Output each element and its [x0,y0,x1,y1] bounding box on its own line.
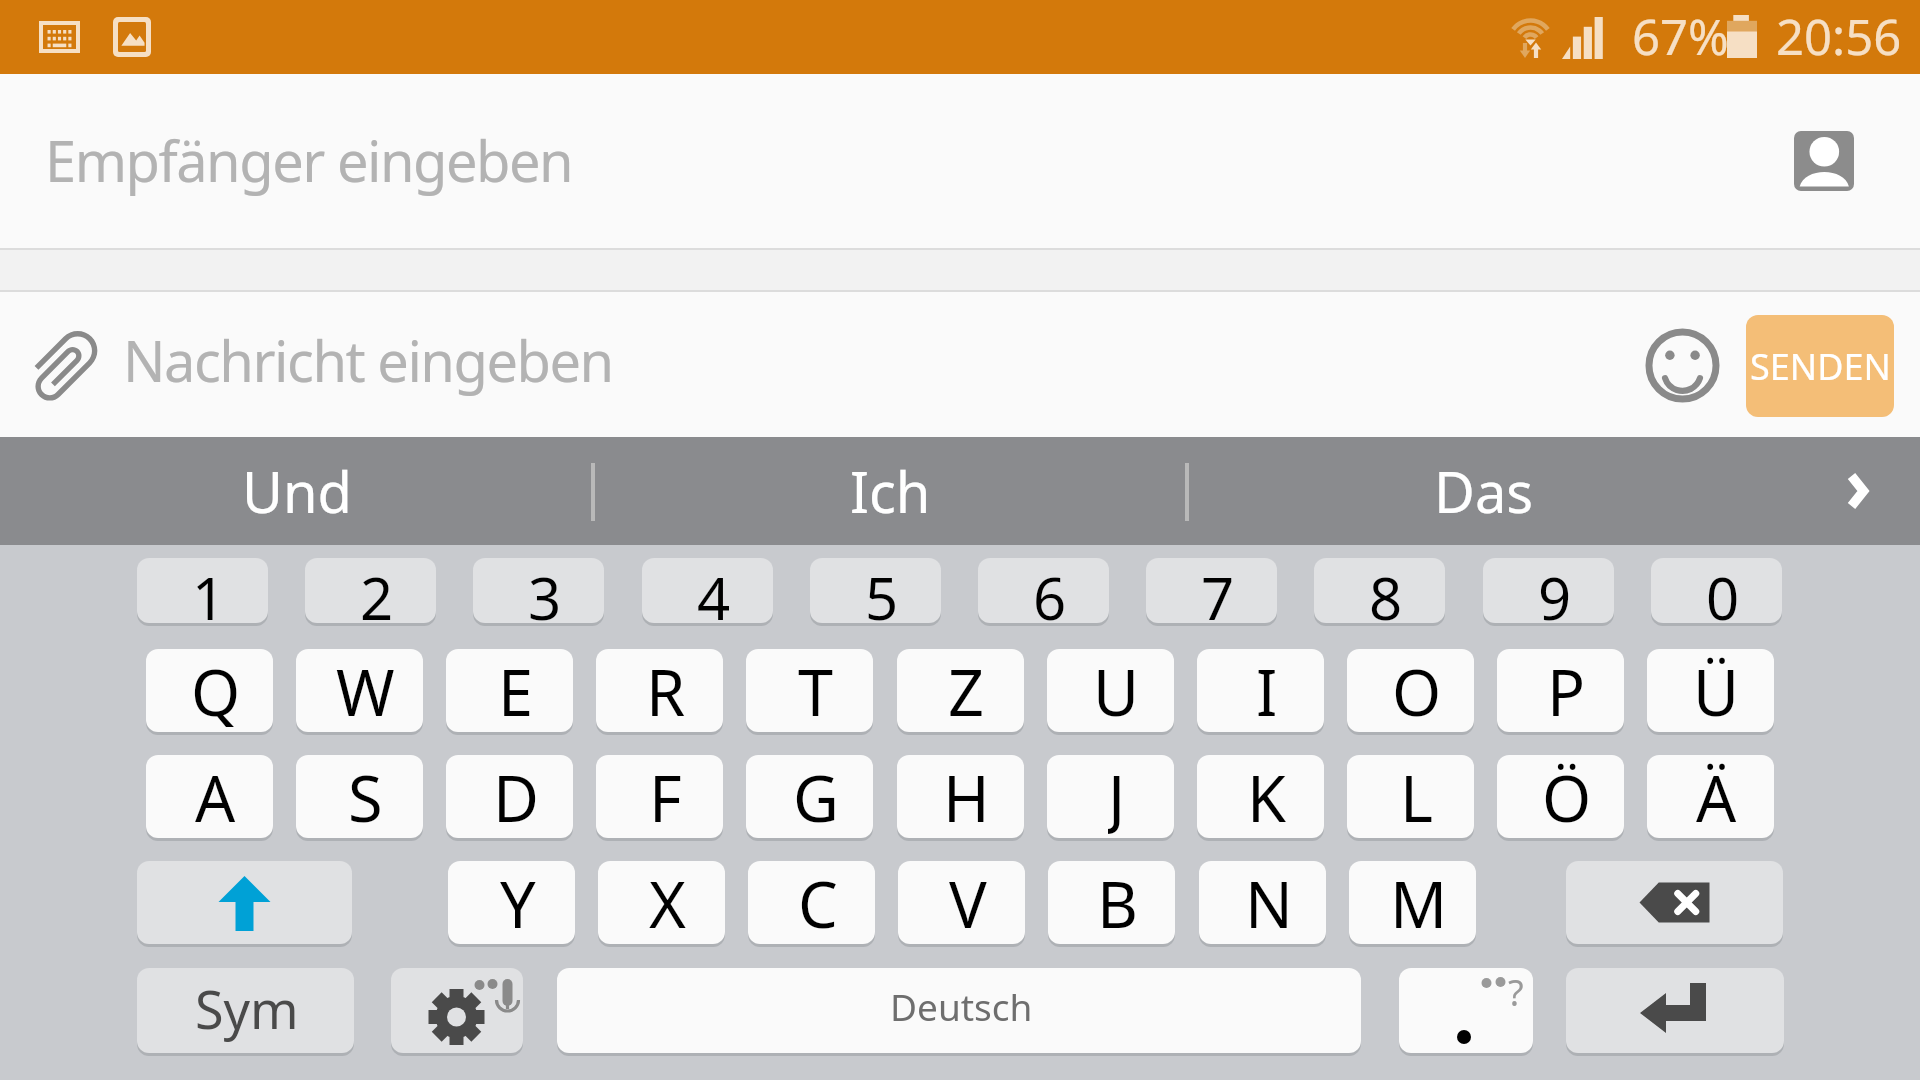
staticText: 20:56 [1776,3,1902,70]
staticText: L [1400,755,1434,838]
staticText: Und [242,453,352,529]
button[interactable]: Z [897,649,1024,732]
button[interactable]: Q [146,649,273,732]
button[interactable]: Deutsch [557,968,1361,1053]
button[interactable]: F [596,755,723,838]
staticText: Empfänger eingeben [45,122,573,198]
staticText: D [493,755,539,838]
staticText: 5 [865,558,899,623]
staticText: Z [948,649,985,732]
button[interactable]: I [1197,649,1324,732]
button[interactable]: Ö [1497,755,1624,838]
staticText: Ich [850,453,931,529]
button[interactable]: Keyboard indicator [39,21,80,53]
button[interactable]: N [1199,861,1326,944]
button[interactable]: Ä [1647,755,1774,838]
staticText: P [1547,649,1586,732]
button[interactable]: S [296,755,423,838]
staticText: H [943,755,990,838]
button[interactable]: More suggestions [1810,437,1910,545]
staticText: 3 [528,558,562,623]
staticText: F [649,755,682,838]
staticText: 4 [697,558,731,623]
staticText: Das [1434,453,1534,529]
staticText: 67% [1632,3,1729,70]
button[interactable]: R [596,649,723,732]
staticText: J [1108,755,1126,838]
staticText: B [1097,861,1138,944]
button[interactable]: Backspace [1566,861,1783,944]
button[interactable]: 0 [1651,558,1782,623]
staticText: V [949,861,987,944]
staticText: 8 [1369,558,1403,623]
button[interactable]: 3 [473,558,604,623]
staticText: C [798,861,838,944]
button[interactable]: J [1047,755,1174,838]
button[interactable]: H [897,755,1024,838]
staticText: S [348,755,383,838]
button[interactable]: O [1347,649,1474,732]
staticText: 6 [1033,558,1067,623]
button[interactable]: V [898,861,1025,944]
button[interactable]: Das [1187,437,1781,545]
staticText: M [1390,861,1448,944]
staticText: Deutsch [890,981,1033,1031]
button[interactable]: P [1497,649,1624,732]
staticText: A [195,755,236,838]
staticText: SENDEN [1750,342,1891,391]
button[interactable]: W [296,649,423,732]
staticText: Q [191,649,241,732]
staticText: E [498,649,534,732]
button[interactable]: Und [0,437,593,545]
button[interactable]: SENDEN [1746,315,1894,417]
button[interactable]: Y [448,861,575,944]
staticText: Y [500,861,536,944]
staticText: ? [1508,968,1524,1017]
button[interactable]: X [598,861,725,944]
button[interactable]: 6 [978,558,1109,623]
button[interactable]: Ü [1647,649,1774,732]
button[interactable]: Screenshot [113,17,151,57]
button[interactable]: E [446,649,573,732]
button[interactable]: Ich [593,437,1187,545]
button[interactable]: G [746,755,873,838]
button[interactable]: Emoji [1645,328,1720,403]
button[interactable]: 9 [1483,558,1614,623]
button[interactable]: 1 [137,558,268,623]
button[interactable]: 7 [1146,558,1277,623]
button[interactable]: 5 [810,558,941,623]
button[interactable]: Settings [391,968,523,1053]
button[interactable]: Sym [137,968,354,1053]
button[interactable]: C [748,861,875,944]
button[interactable]: Period [1399,968,1533,1053]
staticText: 0 [1706,558,1740,623]
staticText: 2 [360,558,394,623]
staticText: K [1247,755,1286,838]
staticText: Nachricht eingeben [123,322,613,398]
button[interactable]: D [446,755,573,838]
button[interactable]: 8 [1314,558,1445,623]
button[interactable]: T [746,649,873,732]
staticText: Sym [195,973,299,1044]
button[interactable]: Contacts [1794,131,1854,191]
staticText: O [1392,649,1442,732]
button[interactable]: U [1047,649,1174,732]
staticText: Ü [1693,649,1740,732]
button[interactable]: Attach [22,323,108,409]
button[interactable]: Enter [1566,968,1784,1053]
staticText: 1 [192,558,226,623]
button[interactable]: 2 [305,558,436,623]
staticText: R [646,649,686,732]
staticText: 9 [1538,558,1572,623]
button[interactable]: 4 [642,558,773,623]
staticText: X [649,861,686,944]
button[interactable]: M [1349,861,1476,944]
button[interactable]: A [146,755,273,838]
button[interactable]: Shift [137,861,352,944]
staticText: Ö [1542,755,1592,838]
staticText: I [1256,649,1278,732]
button[interactable]: K [1197,755,1324,838]
staticText: G [793,755,839,838]
button[interactable]: B [1048,861,1175,944]
button[interactable]: L [1347,755,1474,838]
